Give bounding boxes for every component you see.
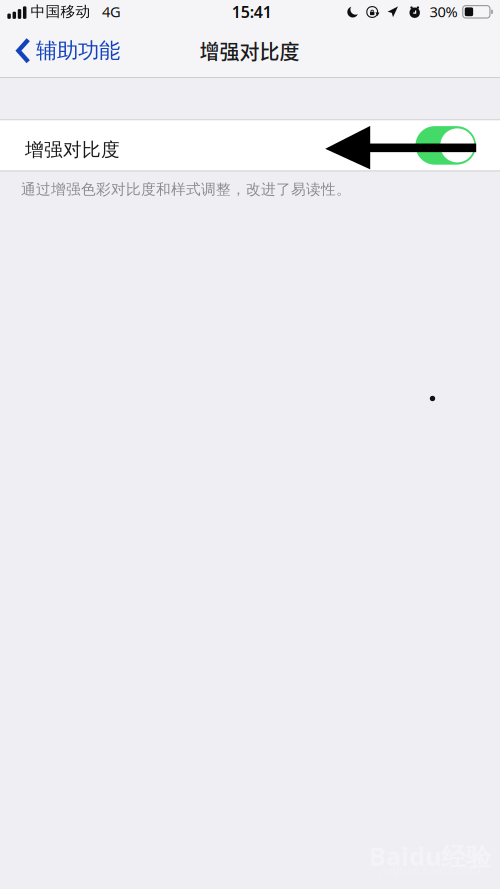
staticText: 增强对比度 (25, 138, 120, 161)
staticText: 中国移动 (30, 2, 90, 20)
staticText: 通过增强色彩对比度和样式调整，改进了易读性。 (21, 180, 351, 198)
button[interactable]: 辅助功能 (0, 25, 130, 76)
button[interactable]: 增强对比度 (415, 126, 476, 165)
staticText: 增强对比度 (199, 36, 299, 65)
staticText: 4G (102, 2, 121, 21)
staticText: 30% (429, 2, 457, 21)
staticText: 辅助功能 (36, 38, 120, 64)
staticText: 15:41 (232, 1, 272, 22)
